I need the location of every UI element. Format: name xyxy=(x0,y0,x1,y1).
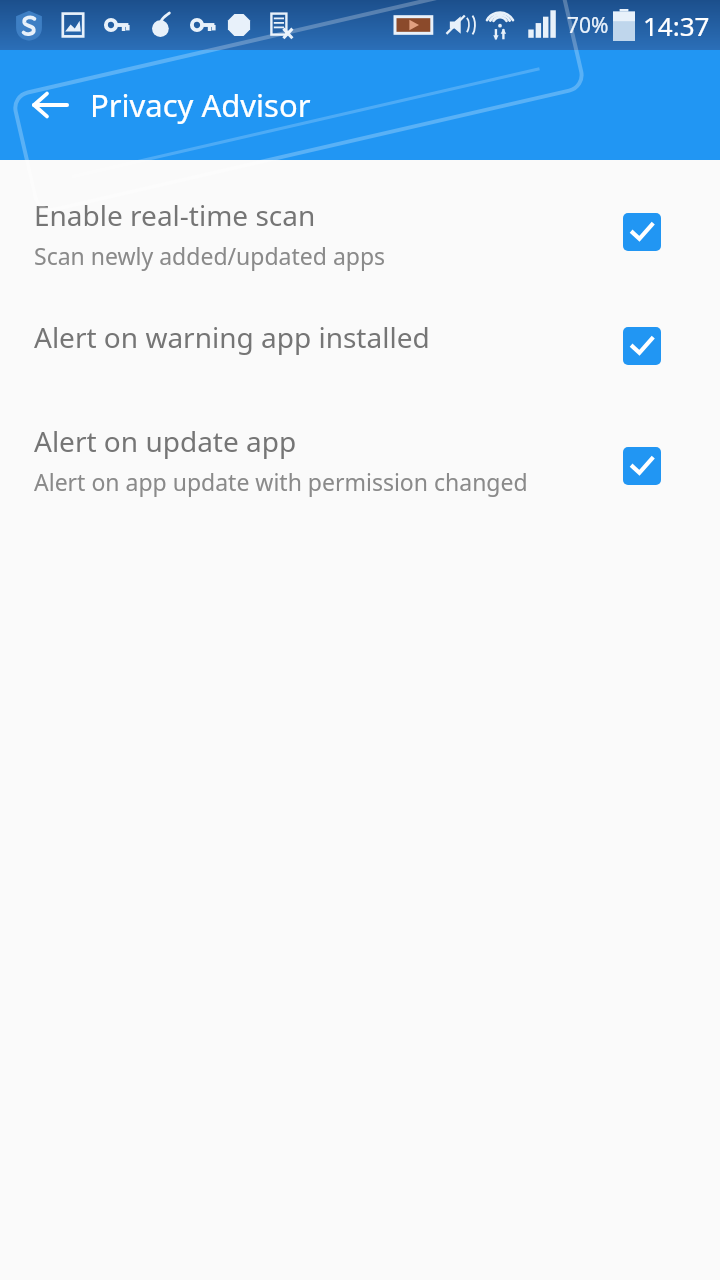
staticText: Alert on warning app installed xyxy=(34,318,430,356)
staticText: Privacy Advisor xyxy=(90,84,311,126)
staticText: 70% xyxy=(567,11,609,40)
button[interactable]: Alert on warning app installed toggle xyxy=(614,318,670,374)
staticText: Scan newly added/updated apps xyxy=(34,240,386,271)
button[interactable]: Alert on update app xyxy=(0,396,720,536)
button[interactable]: Alert on update app toggle xyxy=(614,438,670,494)
staticText: Alert on app update with permission chan… xyxy=(34,466,528,497)
button[interactable]: Alert on warning app installed xyxy=(0,296,720,396)
staticText: Enable real-time scan xyxy=(34,196,316,234)
button[interactable]: Enable real-time scan xyxy=(0,168,720,296)
staticText: 14:37 xyxy=(643,8,710,43)
staticText: Alert on update app xyxy=(34,422,297,460)
button[interactable]: Enable real-time scan toggle xyxy=(614,204,670,260)
button[interactable]: Back xyxy=(22,77,78,133)
